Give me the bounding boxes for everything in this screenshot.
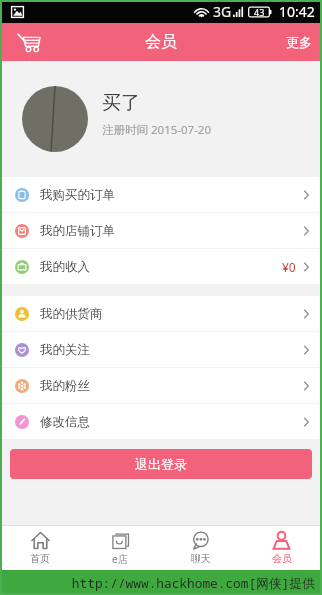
staticText: 我的粉丝 bbox=[40, 378, 90, 394]
staticText: 43 bbox=[254, 6, 265, 18]
staticText: 退出登录 bbox=[135, 456, 187, 472]
button[interactable]: 我的粉丝 bbox=[0, 368, 322, 403]
button[interactable]: 我购买的订单 bbox=[0, 177, 322, 212]
staticText: 10:42 bbox=[279, 2, 315, 21]
staticText: 会员 bbox=[272, 552, 292, 565]
button[interactable]: e店 bbox=[80, 526, 160, 570]
staticText: 我的收入 bbox=[40, 259, 90, 275]
staticText: 我的关注 bbox=[40, 342, 90, 358]
button[interactable]: 退出登录 bbox=[10, 449, 312, 479]
staticText: 我购买的订单 bbox=[40, 187, 115, 203]
button[interactable]: 我的收入 bbox=[0, 249, 322, 284]
button[interactable]: 我的关注 bbox=[0, 332, 322, 367]
staticText: 注册时间 2015-07-20 bbox=[102, 122, 212, 138]
staticText: 买了 bbox=[102, 91, 140, 115]
button[interactable]: 聊天 bbox=[160, 526, 241, 570]
staticText: 首页 bbox=[30, 552, 50, 565]
button[interactable]: 更多 bbox=[276, 26, 322, 58]
button[interactable]: 会员 bbox=[241, 526, 322, 570]
staticText: 聊天 bbox=[191, 552, 211, 565]
button[interactable]: 修改信息 bbox=[0, 404, 322, 439]
staticText: 会员 bbox=[145, 32, 177, 52]
button[interactable]: Shopping cart bbox=[11, 25, 45, 59]
staticText: 修改信息 bbox=[40, 414, 90, 430]
button[interactable]: 我的店铺订单 bbox=[0, 213, 322, 248]
staticText: e店 bbox=[112, 552, 128, 566]
button[interactable]: 我的供货商 bbox=[0, 296, 322, 331]
staticText: 我的供货商 bbox=[40, 306, 103, 322]
staticText: ¥0 bbox=[282, 259, 296, 275]
staticText: 更多 bbox=[286, 34, 312, 50]
staticText: 3G bbox=[213, 2, 232, 21]
staticText: 我的店铺订单 bbox=[40, 223, 115, 239]
staticText: http://www.hackhome.com[网侠]提供 bbox=[71, 574, 315, 591]
button[interactable]: 首页 bbox=[0, 526, 80, 570]
